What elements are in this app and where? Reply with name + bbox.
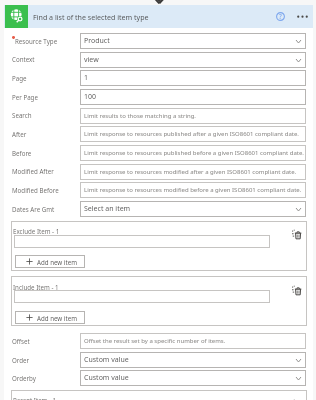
- button[interactable]: Help: [273, 9, 287, 23]
- staticText: ?: [279, 12, 282, 20]
- button[interactable]: Limit response to resources published be…: [80, 145, 306, 161]
- button[interactable]: Limit response to resources modified aft…: [80, 164, 306, 180]
- staticText: After: [12, 130, 27, 138]
- staticText: Before: [12, 149, 32, 157]
- button[interactable]: 1: [80, 70, 306, 86]
- button[interactable]: Add new item: [15, 255, 85, 268]
- staticText: Order: [12, 356, 30, 364]
- staticText: Limit response to resources modified aft…: [84, 168, 297, 176]
- button[interactable]: Delete Exclude Item - 1: [290, 228, 303, 241]
- staticText: Add new item: [37, 314, 77, 322]
- staticText: Limit response to resources published be…: [84, 149, 304, 157]
- staticText: Search: [12, 111, 32, 119]
- staticText: Orderby: [12, 374, 36, 382]
- button[interactable]: More options: [295, 9, 309, 23]
- button[interactable]: Offset the result set by a specific numb…: [80, 333, 306, 349]
- staticText: 100: [84, 92, 97, 102]
- button[interactable]: Collapse: [154, 0, 165, 8]
- button[interactable]: Select an item: [80, 201, 306, 217]
- button[interactable]: [14, 290, 270, 303]
- button[interactable]: Limit response to resources modified bef…: [80, 182, 306, 198]
- button[interactable]: view: [80, 52, 306, 68]
- staticText: Resource Type: [15, 37, 58, 45]
- button[interactable]: Add new item: [15, 311, 85, 324]
- staticText: Limit results to those matching a string…: [84, 112, 196, 120]
- staticText: view: [84, 55, 99, 65]
- staticText: Dates Are Gmt: [12, 205, 55, 213]
- button[interactable]: Limit response to resources published af…: [80, 126, 306, 142]
- button[interactable]: Find a list of the selected item type: [4, 5, 313, 28]
- button[interactable]: [14, 235, 270, 248]
- staticText: Limit response to resources published af…: [84, 130, 299, 138]
- button[interactable]: Delete Parent Item - 1: [290, 398, 303, 400]
- button[interactable]: 100: [80, 89, 306, 105]
- button[interactable]: Custom value: [80, 370, 306, 386]
- staticText: Parent Item - 1: [13, 396, 57, 400]
- staticText: Exclude Item - 1: [13, 227, 60, 235]
- button[interactable]: Product: [80, 33, 306, 49]
- staticText: Context: [12, 55, 35, 63]
- button[interactable]: Limit results to those matching a string…: [80, 108, 306, 124]
- staticText: Page: [12, 74, 27, 82]
- staticText: Product: [84, 36, 110, 46]
- staticText: Limit response to resources modified bef…: [84, 186, 302, 194]
- staticText: Add new item: [37, 258, 77, 266]
- staticText: Per Page: [12, 93, 38, 101]
- button[interactable]: Delete Include Item - 1: [290, 284, 303, 297]
- staticText: Custom value: [84, 373, 129, 383]
- button[interactable]: Custom value: [80, 352, 306, 368]
- staticText: Offset the result set by a specific numb…: [84, 337, 226, 345]
- staticText: Select an item: [84, 204, 131, 214]
- staticText: Find a list of the selected item type: [33, 12, 149, 22]
- staticText: Offset: [12, 337, 30, 345]
- staticText: Include Item - 1: [13, 283, 59, 291]
- staticText: Modified Before: [12, 186, 59, 194]
- staticText: 1: [84, 73, 89, 83]
- staticText: Custom value: [84, 355, 129, 365]
- staticText: Modified After: [12, 167, 54, 175]
